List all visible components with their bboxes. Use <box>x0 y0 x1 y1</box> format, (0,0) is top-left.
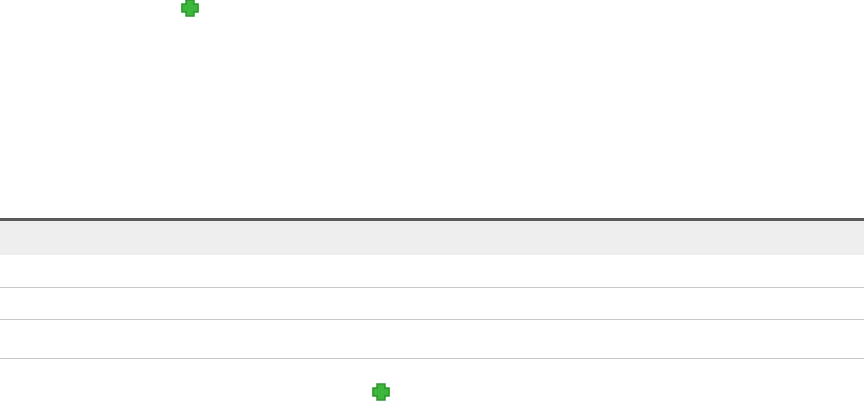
button[interactable]: Add <box>180 0 200 18</box>
button[interactable]: Add row <box>371 382 391 402</box>
